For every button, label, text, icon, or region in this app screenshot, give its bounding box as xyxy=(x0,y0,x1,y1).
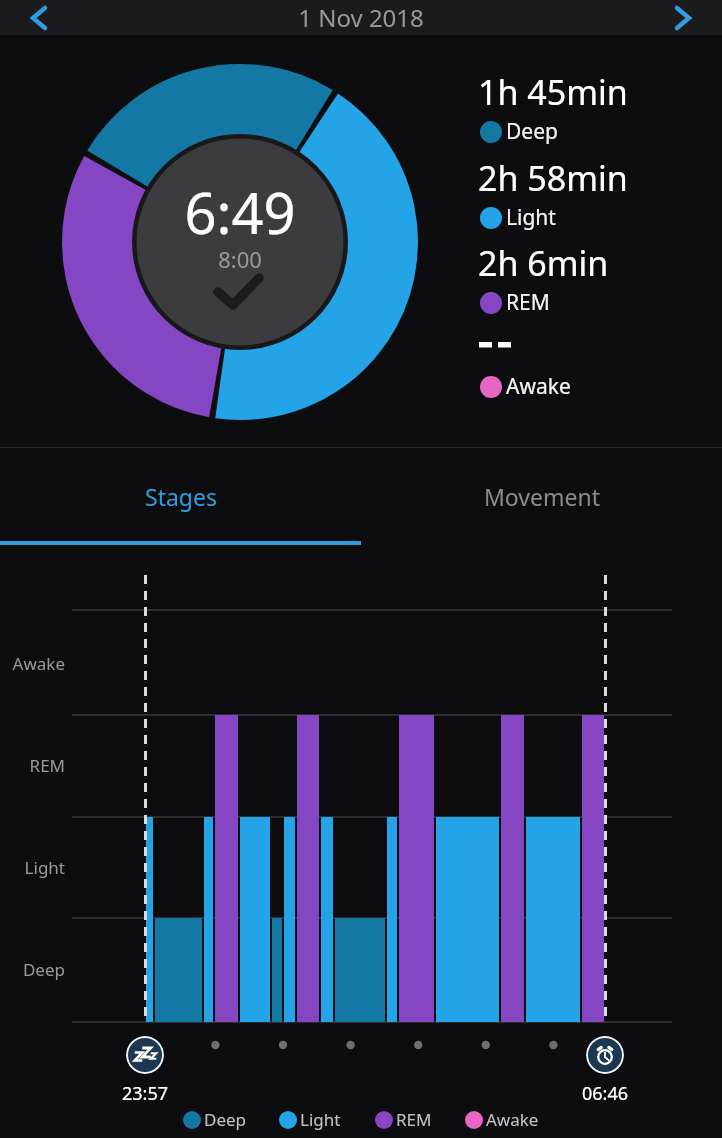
staticText: Deep xyxy=(0,958,65,981)
staticText: REM xyxy=(0,754,65,777)
staticText: REM xyxy=(506,288,550,317)
staticText: 6:49 xyxy=(90,174,390,250)
staticText: 06:46 xyxy=(555,1081,655,1106)
staticText: Awake xyxy=(506,372,571,401)
button[interactable] xyxy=(586,1036,624,1074)
staticText: Light xyxy=(300,1108,341,1131)
button[interactable] xyxy=(662,0,702,35)
staticText: 2h 6min xyxy=(478,240,609,286)
staticText: Light xyxy=(0,856,65,879)
button[interactable] xyxy=(126,1036,164,1074)
staticText: Stages xyxy=(145,481,217,512)
button[interactable]: Movement xyxy=(361,448,722,545)
staticText: 2h 58min xyxy=(478,155,628,201)
staticText: 1 Nov 2018 xyxy=(0,1,722,34)
staticText: Awake xyxy=(0,652,65,675)
staticText: Deep xyxy=(506,117,558,146)
staticText: Deep xyxy=(204,1108,247,1131)
button[interactable]: Stages xyxy=(0,448,361,545)
staticText: 1h 45min xyxy=(478,69,628,115)
staticText: Light xyxy=(506,203,556,232)
staticText: Awake xyxy=(486,1108,539,1131)
staticText: REM xyxy=(396,1108,432,1131)
staticText: 8:00 xyxy=(90,244,390,274)
staticText: Movement xyxy=(484,481,600,512)
button[interactable] xyxy=(20,0,60,35)
staticText: 23:57 xyxy=(95,1081,195,1106)
